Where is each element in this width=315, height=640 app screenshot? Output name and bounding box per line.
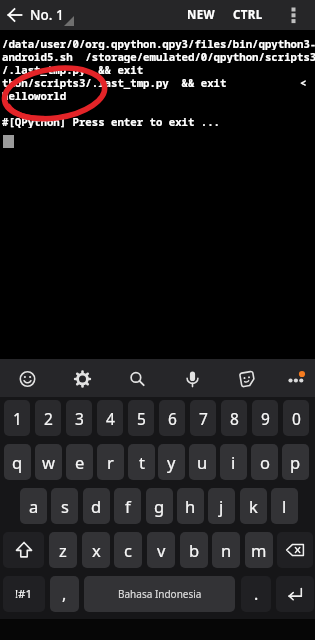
button[interactable] [156,359,209,397]
staticText: thon/scripts3/.last_tmp.py && exit [2,76,227,89]
staticText: helloworld [2,89,67,102]
button[interactable]: 0 [283,400,309,436]
button[interactable]: w [35,444,62,480]
button[interactable] [209,359,262,397]
button[interactable]: 4 [97,400,123,436]
button[interactable] [0,0,30,30]
staticText: . [254,583,259,605]
button[interactable]: f [114,488,141,524]
button[interactable]: n [212,532,240,568]
staticText: 3 [75,408,84,429]
staticText: 2 [44,408,53,429]
button[interactable]: u [189,444,216,480]
button[interactable] [277,532,313,568]
button[interactable]: j [208,488,235,524]
staticText: android5.sh /storage/emulated/0/qpython/… [2,50,315,63]
staticText: /.last_tmp.py && exit [2,63,144,76]
button[interactable]: k [240,488,267,524]
staticText: CTRL [233,7,263,23]
staticText: d [91,495,102,517]
staticText: g [154,495,165,517]
staticText: 5 [137,408,146,429]
button[interactable]: x [82,532,110,568]
button[interactable]: l [271,488,298,524]
staticText: x [92,539,101,561]
staticText: o [260,451,270,473]
staticText: e [75,451,85,473]
staticText: Bahasa Indonesia [118,587,202,601]
staticText: q [12,451,23,473]
button[interactable]: 8 [221,400,247,436]
button[interactable]: 7 [190,400,216,436]
staticText: < [300,76,307,89]
button[interactable]: 6 [159,400,185,436]
button[interactable]: CTRL [233,0,263,30]
staticText: m [251,539,267,561]
staticText: j [219,495,224,517]
button[interactable]: i [220,444,247,480]
button[interactable]: . [241,576,271,612]
staticText: t [139,451,145,473]
button[interactable]: p [282,444,309,480]
button[interactable]: o [251,444,278,480]
staticText: z [59,539,67,561]
button[interactable]: !#1 [3,576,45,612]
button[interactable] [262,359,315,397]
button[interactable] [0,359,52,397]
button[interactable]: a [20,488,47,524]
staticText: 6 [168,408,177,429]
staticText: k [249,495,258,517]
staticText: 7 [199,408,208,429]
button[interactable]: b [180,532,208,568]
staticText: f [125,495,131,517]
button[interactable] [3,532,44,568]
staticText: l [282,495,287,517]
button[interactable] [52,359,104,397]
staticText: v [157,539,166,561]
staticText: c [124,539,132,561]
staticText: n [221,539,232,561]
staticText: i [231,451,236,473]
staticText: NEW [187,7,216,23]
staticText: b [189,539,200,561]
staticText: s [61,495,69,517]
staticText: y [167,451,176,473]
button[interactable]: NEW [187,0,216,30]
button[interactable]: Bahasa Indonesia [84,576,235,612]
button[interactable] [276,576,314,612]
staticText: p [290,451,301,473]
staticText: r [107,451,114,473]
button[interactable]: 3 [66,400,92,436]
staticText: u [197,451,208,473]
button[interactable]: t [128,444,155,480]
button[interactable]: e [66,444,93,480]
button[interactable]: No. 1 [30,6,74,24]
button[interactable]: , [50,576,79,612]
button[interactable]: q [4,444,31,480]
staticText: , [62,583,67,605]
button[interactable]: 9 [252,400,278,436]
button[interactable]: v [147,532,175,568]
button[interactable]: y [158,444,185,480]
button[interactable]: c [114,532,142,568]
button[interactable]: m [245,532,273,568]
staticText: 4 [106,408,115,429]
staticText: /data/user/0/org.qpython.qpy3/files/bin/… [2,37,315,50]
button[interactable]: 5 [128,400,154,436]
staticText: 8 [230,408,239,429]
staticText: !#1 [15,586,33,602]
button[interactable]: s [51,488,78,524]
button[interactable] [278,0,308,30]
button[interactable] [104,359,156,397]
button[interactable]: d [83,488,110,524]
staticText: No. 1 [30,6,64,24]
button[interactable]: r [97,444,124,480]
button[interactable]: 2 [35,400,61,436]
button[interactable]: g [146,488,173,524]
staticText: a [29,495,39,517]
button[interactable]: h [177,488,204,524]
staticText: 0 [292,408,301,429]
button[interactable]: z [49,532,77,568]
staticText: h [185,495,196,517]
button[interactable]: 1 [4,400,30,436]
